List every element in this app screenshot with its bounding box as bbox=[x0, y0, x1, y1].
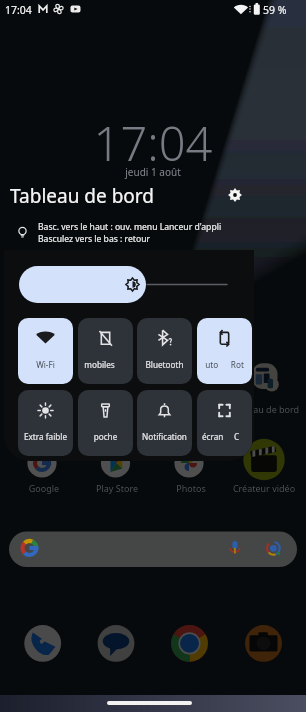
staticText: Bluetooth bbox=[137, 359, 192, 370]
button[interactable]: Luminosité bbox=[19, 266, 146, 303]
staticText: Wi-Fi bbox=[18, 359, 73, 370]
button[interactable]: mobiles bbox=[78, 318, 133, 384]
button[interactable]: Extra faible bbox=[18, 390, 73, 456]
staticText: jeudi 1 août bbox=[0, 165, 306, 179]
button[interactable]: poche bbox=[78, 390, 133, 456]
button[interactable]: Notification bbox=[137, 390, 192, 456]
staticText: Play Store bbox=[79, 482, 155, 494]
staticText: Créateur vidéo bbox=[226, 482, 302, 494]
button[interactable]: Wi-Fi bbox=[18, 318, 73, 384]
staticText: uto Rot bbox=[197, 359, 252, 370]
staticText: Tableau de bord bbox=[10, 183, 155, 209]
staticText: Photos bbox=[153, 482, 229, 494]
staticText: écran C bbox=[197, 431, 248, 442]
button[interactable]: uto Rot bbox=[197, 318, 252, 384]
staticText: Notification bbox=[137, 431, 192, 442]
staticText: 17:04 bbox=[0, 111, 306, 175]
button[interactable]: Paramètres bbox=[225, 185, 245, 205]
staticText: 59 % bbox=[263, 3, 287, 17]
staticText: 17:04 bbox=[5, 3, 32, 17]
staticText: Google bbox=[6, 482, 82, 494]
staticText: mobiles bbox=[78, 359, 127, 370]
staticText: Basculez vers le bas : retour bbox=[38, 233, 151, 245]
button[interactable]: Bluetooth bbox=[137, 318, 192, 384]
staticText: poche bbox=[78, 431, 133, 442]
button[interactable]: écran C bbox=[197, 390, 252, 456]
staticText: Basc. vers le haut : ouv. menu Lanceur d… bbox=[38, 221, 222, 233]
staticText: Extra faible bbox=[18, 431, 73, 442]
staticText: Tableau de bord bbox=[223, 403, 306, 415]
